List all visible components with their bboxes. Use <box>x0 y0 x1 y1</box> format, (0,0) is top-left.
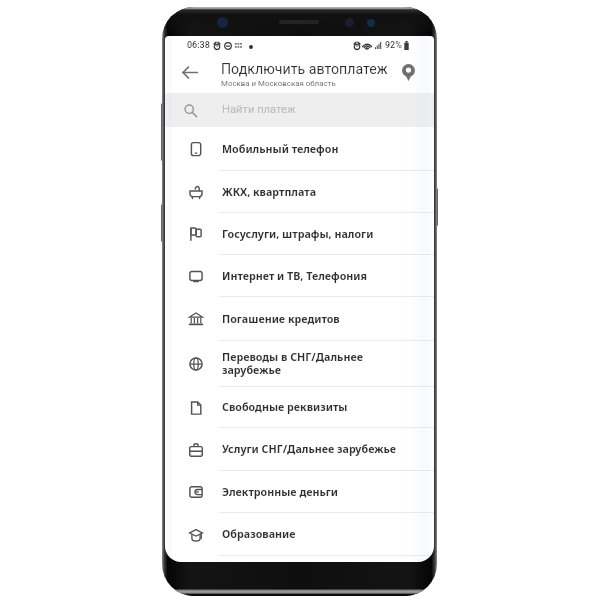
staticText: ЖКХ, квартплата <box>222 185 317 200</box>
staticText: 06:38 <box>187 40 210 51</box>
staticText: Госуслуги, штрафы, налоги <box>222 227 374 242</box>
button[interactable]: Местоположение <box>395 59 421 85</box>
button[interactable]: Услуги СНГ/Дальнее зарубежье <box>165 428 434 471</box>
staticText: Москва и Московская область <box>221 79 336 88</box>
button[interactable]: Погашение кредитов <box>165 297 434 341</box>
staticText: Найти платеж <box>222 103 296 116</box>
button[interactable]: Мобильный телефон <box>165 127 434 171</box>
button[interactable]: Электронные деньги <box>165 471 434 513</box>
button[interactable]: Интернет и ТВ, Телефония <box>165 255 434 297</box>
staticText: 92% <box>385 40 402 51</box>
button[interactable]: Назад <box>177 59 203 85</box>
staticText: Погашение кредитов <box>222 312 340 327</box>
button[interactable]: Госуслуги, штрафы, налоги <box>165 213 434 255</box>
button[interactable]: Образование <box>165 513 434 556</box>
button[interactable]: Переводы в СНГ/Дальнее зарубежье <box>165 341 434 387</box>
staticText: Свободные реквизиты <box>222 400 348 415</box>
staticText: Образование <box>222 527 296 542</box>
button[interactable]: Свободные реквизиты <box>165 387 434 428</box>
staticText: Подключить автоплатеж <box>221 61 388 78</box>
staticText: Интернет и ТВ, Телефония <box>222 269 368 284</box>
button[interactable]: ЖКХ, квартплата <box>165 171 434 213</box>
staticText: Электронные деньги <box>222 485 339 500</box>
staticText: Услуги СНГ/Дальнее зарубежье <box>222 442 396 457</box>
button[interactable]: Найти платеж <box>165 93 434 127</box>
staticText: Мобильный телефон <box>222 142 339 157</box>
staticText: Переводы в СНГ/Дальнее зарубежье <box>222 350 363 378</box>
